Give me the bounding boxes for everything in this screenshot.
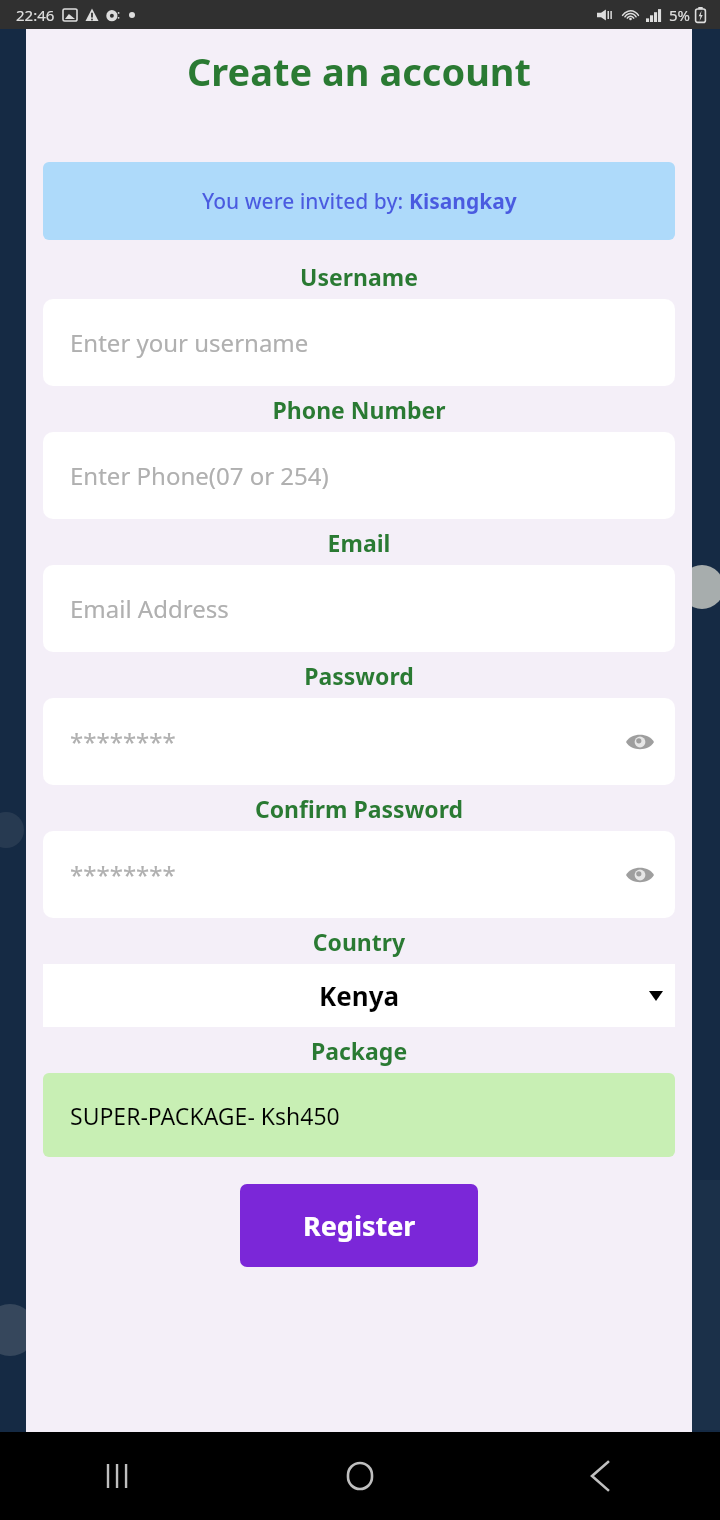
button[interactable]: Email Address [43, 565, 675, 652]
staticText: ******** [70, 858, 176, 891]
staticText: Kenya [43, 978, 675, 1013]
staticText: Email [26, 527, 692, 558]
staticText: Password [26, 660, 692, 691]
staticText: 5% [669, 5, 691, 25]
staticText: Kisangkay [409, 187, 517, 216]
button[interactable]: SUPER-PACKAGE- Ksh450 [43, 1073, 675, 1157]
staticText: Username [26, 261, 692, 292]
button[interactable]: Back [480, 1432, 720, 1520]
button[interactable]: ******** [43, 831, 675, 918]
staticText: Email Address [70, 592, 229, 625]
button[interactable]: Register [240, 1184, 478, 1267]
button[interactable]: Show password [623, 725, 657, 759]
staticText: Confirm Password [26, 793, 692, 824]
button[interactable]: Enter Phone(07 or 254) [43, 432, 675, 519]
staticText: Enter Phone(07 or 254) [70, 459, 329, 492]
staticText: Register [303, 1207, 416, 1244]
staticText: SUPER-PACKAGE- Ksh450 [70, 1100, 340, 1131]
button[interactable]: Enter your username [43, 299, 675, 386]
button[interactable]: ******** [43, 698, 675, 785]
staticText: Phone Number [26, 394, 692, 425]
staticText: You were invited by: [202, 187, 409, 216]
staticText: Country [26, 926, 692, 957]
staticText: 22:46 [16, 5, 55, 25]
button[interactable]: Kenya [43, 964, 675, 1027]
button[interactable]: You were invited by: [43, 162, 675, 240]
button[interactable]: Home [240, 1432, 480, 1520]
button[interactable]: Recent apps [0, 1432, 240, 1520]
staticText: Create an account [26, 45, 692, 97]
staticText: Enter your username [70, 326, 309, 359]
button[interactable]: Show password [623, 858, 657, 892]
staticText: ******** [70, 725, 176, 758]
staticText: Package [26, 1035, 692, 1066]
